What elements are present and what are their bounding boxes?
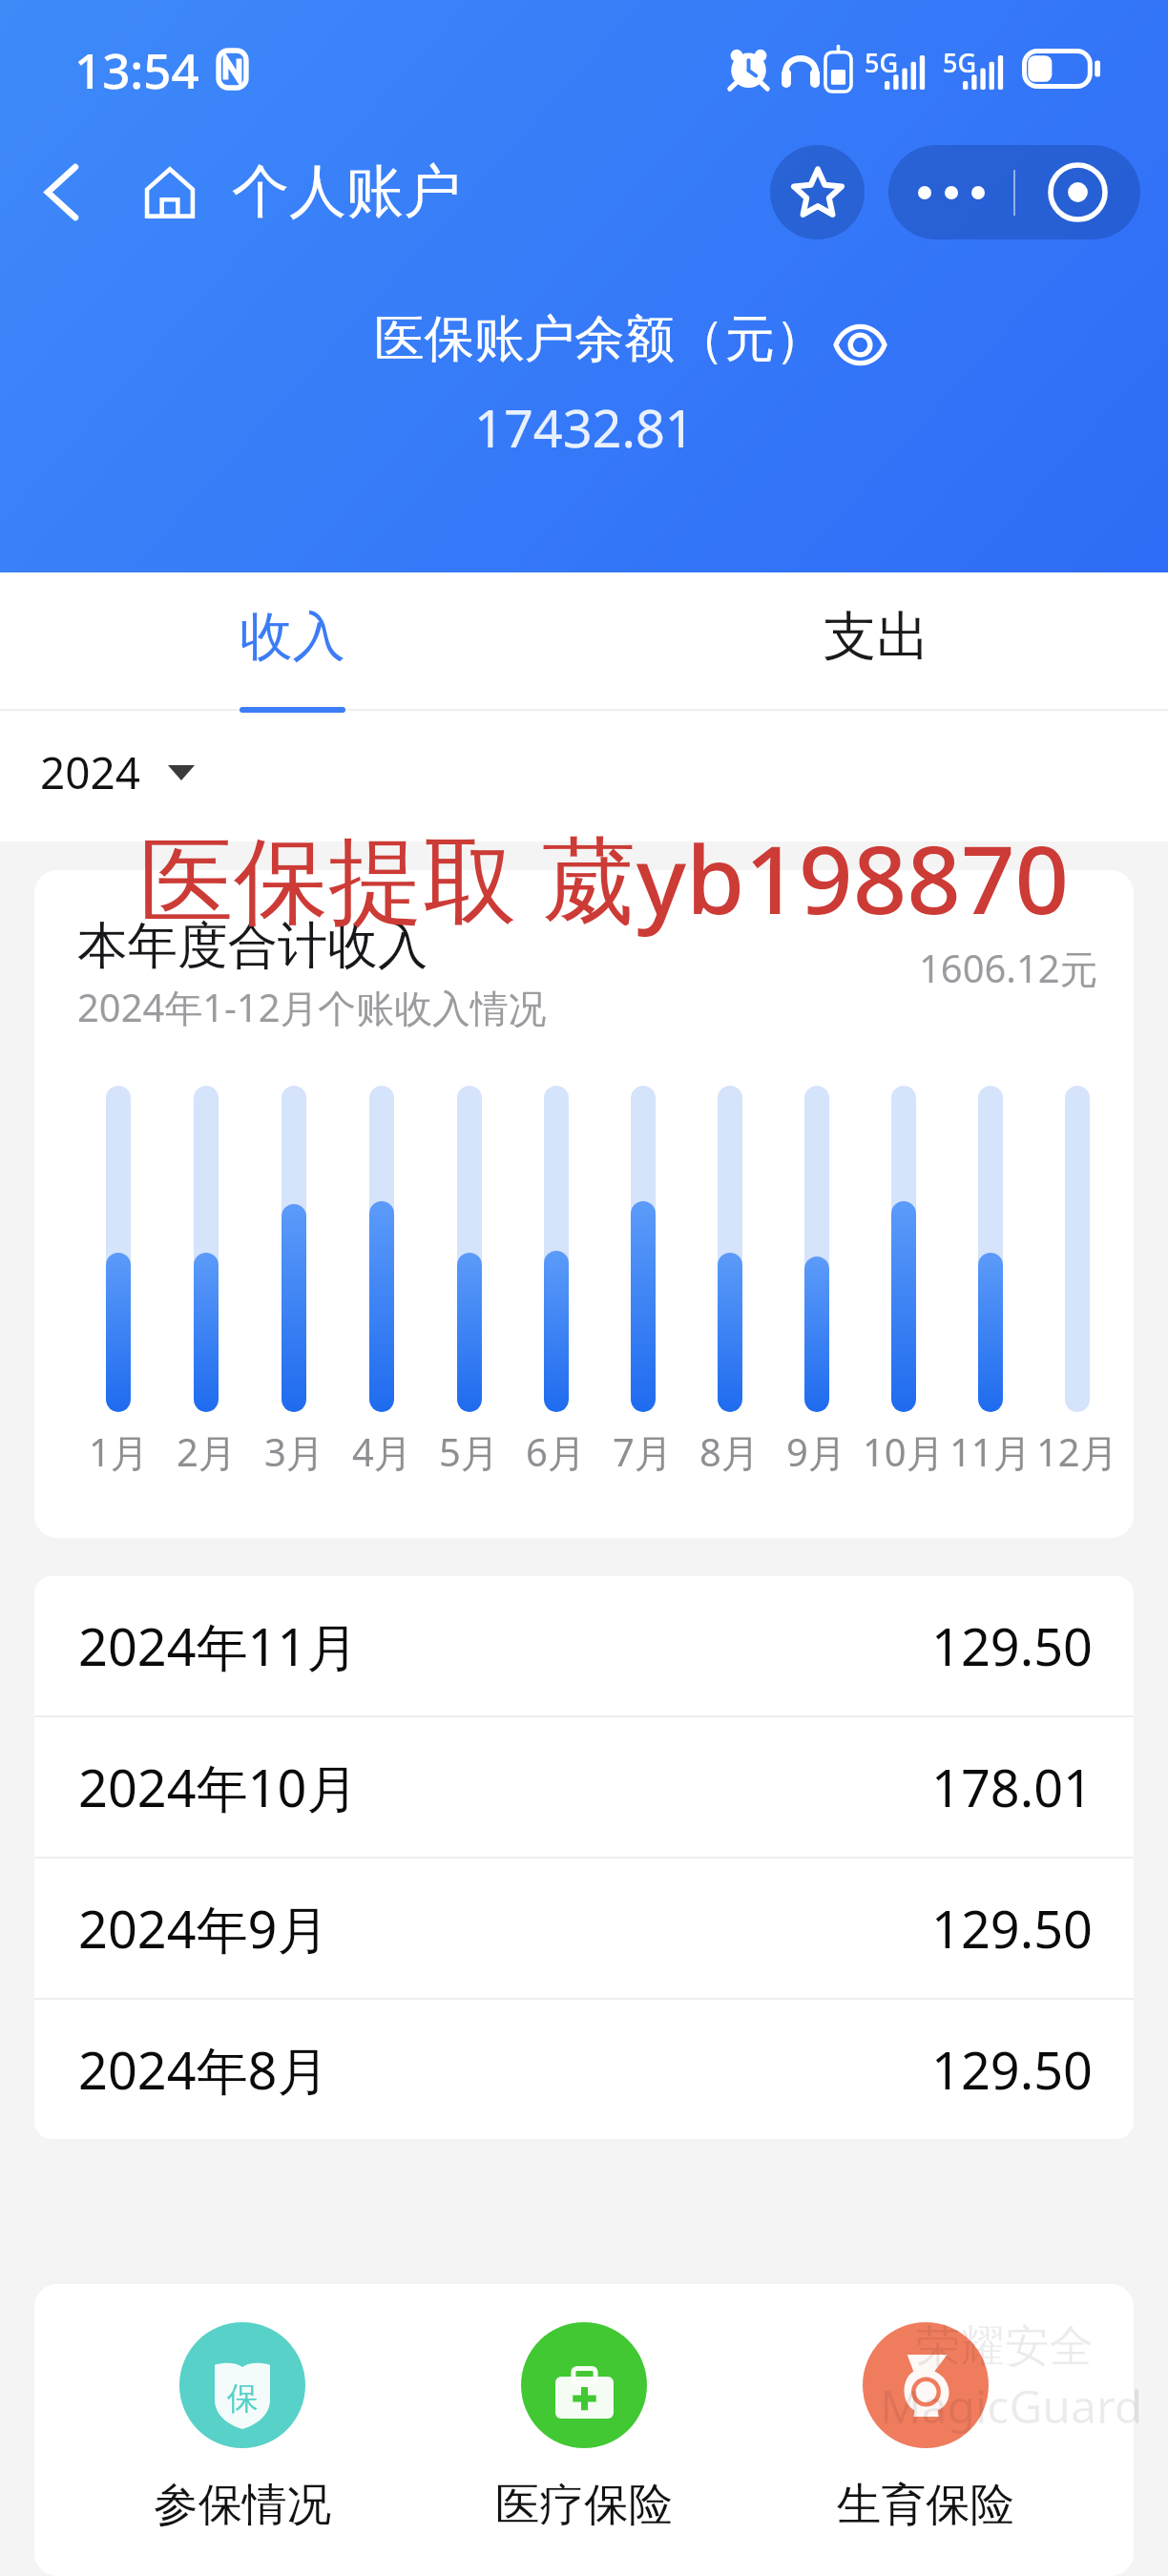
staticText: 2024年1-12月个账收入情况 xyxy=(77,981,547,1032)
staticText: 4月 xyxy=(352,1425,412,1477)
staticText: 5G xyxy=(865,45,899,80)
staticText: 保 xyxy=(227,2379,259,2419)
staticText: 5G xyxy=(943,45,977,80)
staticText: 9月 xyxy=(786,1425,846,1477)
staticText: 1606.12元 xyxy=(919,942,1098,993)
staticText: 收入 xyxy=(240,604,345,671)
button[interactable]: 2024年10月 xyxy=(34,1717,1134,1857)
staticText: 1月 xyxy=(89,1425,149,1477)
staticText: 2024 xyxy=(40,742,140,802)
button[interactable]: 生育保险 xyxy=(755,2284,1096,2571)
staticText: 17432.81 xyxy=(474,392,695,463)
staticText: 医保账户余额（元） xyxy=(374,307,825,370)
button[interactable]: Back xyxy=(3,134,120,251)
staticText: 129.50 xyxy=(931,2034,1093,2105)
staticText: 129.50 xyxy=(931,1893,1093,1963)
staticText: 医保提取 葳yb198870 xyxy=(139,813,1070,942)
staticText: 11月 xyxy=(949,1425,1032,1477)
button[interactable]: Toggle balance visibility xyxy=(833,323,887,366)
staticText: 荣耀安全 xyxy=(916,2318,1094,2375)
button[interactable]: Home xyxy=(111,134,228,251)
staticText: 10月 xyxy=(863,1425,945,1477)
staticText: 12月 xyxy=(1036,1425,1118,1477)
button[interactable]: More options xyxy=(888,145,1013,239)
staticText: 178.01 xyxy=(931,1752,1093,1822)
staticText: 5月 xyxy=(439,1425,499,1477)
staticText: 129.50 xyxy=(931,1610,1093,1681)
button[interactable]: 保 xyxy=(72,2284,413,2571)
button[interactable]: Favorite xyxy=(770,145,865,239)
staticText: 生育保险 xyxy=(837,2477,1014,2533)
staticText: 本年度合计收入 xyxy=(77,914,428,977)
button[interactable]: 2024年9月 xyxy=(34,1859,1134,1998)
button[interactable]: 支出 xyxy=(584,572,1168,639)
button[interactable]: Close xyxy=(1015,145,1140,239)
staticText: 8月 xyxy=(699,1425,760,1477)
staticText: 2024年11月 xyxy=(78,1610,359,1681)
staticText: 13:54 xyxy=(74,36,199,102)
button[interactable]: 2024 xyxy=(34,729,200,823)
staticText: MagicGuard xyxy=(880,2375,1143,2437)
staticText: 支出 xyxy=(824,604,929,671)
staticText: 7月 xyxy=(613,1425,673,1477)
staticText: 2024年9月 xyxy=(78,1893,329,1963)
staticText: 2024年8月 xyxy=(78,2034,329,2105)
button[interactable]: 医疗保险 xyxy=(413,2284,755,2571)
staticText: 参保情况 xyxy=(154,2477,331,2533)
button[interactable]: 2024年8月 xyxy=(34,2000,1134,2139)
button[interactable]: 收入 xyxy=(0,572,584,639)
staticText: 3月 xyxy=(264,1425,324,1477)
staticText: 医疗保险 xyxy=(495,2477,673,2533)
staticText: 2月 xyxy=(177,1425,237,1477)
staticText: 2024年10月 xyxy=(78,1752,359,1822)
staticText: 个人账户 xyxy=(232,156,461,228)
button[interactable]: 2024年11月 xyxy=(34,1576,1134,1715)
staticText: 6月 xyxy=(526,1425,586,1477)
